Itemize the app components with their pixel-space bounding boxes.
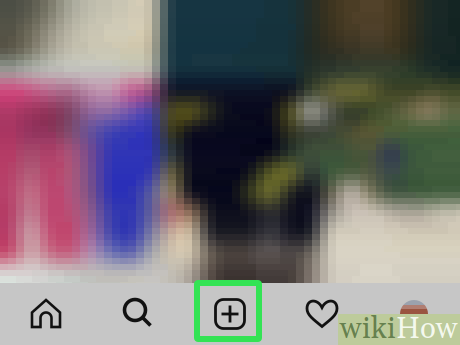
button[interactable]: New post	[194, 280, 262, 342]
staticText: wiki	[340, 311, 396, 345]
button[interactable]: New post	[184, 283, 276, 345]
button[interactable]: Activity	[276, 283, 368, 345]
button[interactable]: Search	[92, 283, 184, 345]
button[interactable]: Home	[0, 283, 92, 345]
button[interactable]: Profile	[368, 283, 460, 345]
staticText: How	[396, 311, 458, 345]
